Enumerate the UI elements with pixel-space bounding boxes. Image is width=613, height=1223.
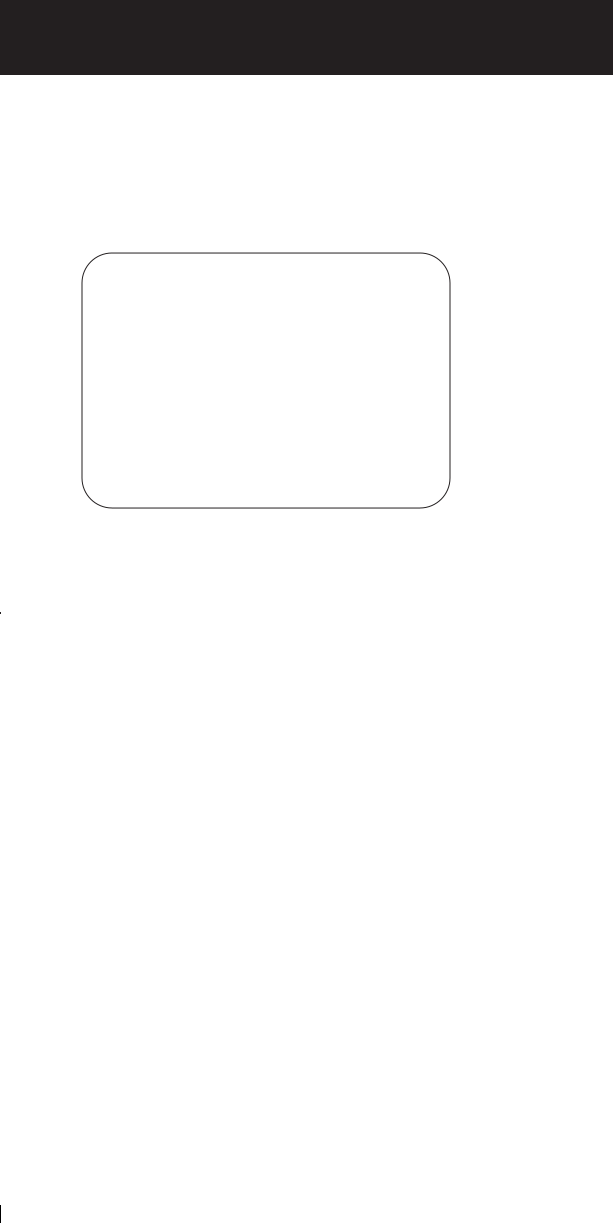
button[interactable]: Card xyxy=(82,253,450,508)
